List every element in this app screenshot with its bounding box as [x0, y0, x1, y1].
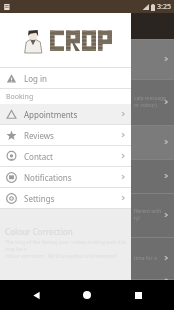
button[interactable]: calp message: [0, 79, 174, 125]
staticText: colour correction. We'll be perfect and …: [5, 253, 117, 260]
button[interactable]: [0, 13, 131, 67]
button[interactable]: Recents: [123, 280, 153, 310]
staticText: or colour): [134, 102, 157, 109]
button[interactable]: Home: [72, 280, 102, 310]
staticText: Appointments: [24, 109, 78, 120]
button[interactable]: Appointments: [0, 104, 131, 124]
button[interactable]: [0, 39, 174, 79]
staticText: time for a: [134, 255, 157, 262]
button[interactable]: fferent with: [0, 193, 174, 237]
button[interactable]: Settings: [0, 188, 131, 208]
staticText: Notifications: [24, 172, 72, 183]
staticText: ry!: [134, 215, 140, 222]
button[interactable]: [0, 159, 174, 193]
staticText: Booking: [6, 92, 34, 102]
button[interactable]: [0, 125, 174, 159]
button[interactable]: time for a: [0, 237, 174, 279]
staticText: Contact: [24, 151, 53, 162]
button[interactable]: Notifications: [0, 167, 131, 187]
button[interactable]: Contact: [0, 146, 131, 166]
staticText: fferent with: [134, 208, 162, 215]
button[interactable]: r shoulder: [0, 279, 174, 280]
staticText: calp message: [134, 95, 166, 102]
staticText: 3:25: [157, 2, 171, 12]
button[interactable]: Log in: [0, 68, 131, 88]
button[interactable]: Back: [21, 280, 51, 310]
staticText: Reviews: [24, 130, 54, 141]
button[interactable]: Reviews: [0, 125, 131, 145]
staticText: Settings: [24, 193, 55, 204]
staticText: Log in: [24, 73, 48, 84]
staticText: Colour Correction: [5, 226, 73, 237]
